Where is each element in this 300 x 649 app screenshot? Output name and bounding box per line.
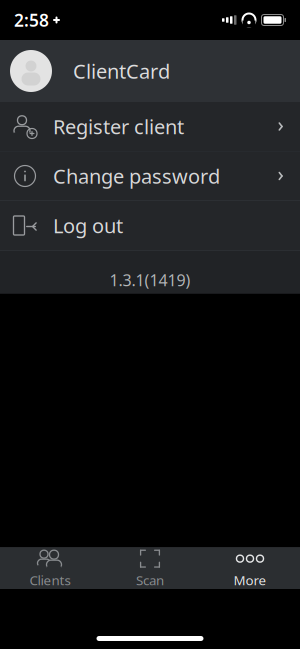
button[interactable]: Change password xyxy=(0,151,300,200)
button[interactable]: Register client xyxy=(0,102,300,151)
staticText: Scan xyxy=(136,571,164,589)
staticText: Register client xyxy=(53,113,184,140)
staticText: 1.3.1(1419) xyxy=(109,269,190,291)
staticText: More xyxy=(233,571,266,589)
button[interactable]: Log out xyxy=(0,201,300,250)
button[interactable]: Clients xyxy=(0,548,100,589)
staticText: 2:58 xyxy=(14,8,49,31)
staticText: ClientCard xyxy=(73,58,170,84)
button[interactable]: More xyxy=(200,548,300,589)
staticText: Change password xyxy=(53,163,220,189)
staticText: Clients xyxy=(29,571,70,589)
button[interactable]: Scan xyxy=(100,548,200,589)
staticText: Log out xyxy=(53,212,123,239)
